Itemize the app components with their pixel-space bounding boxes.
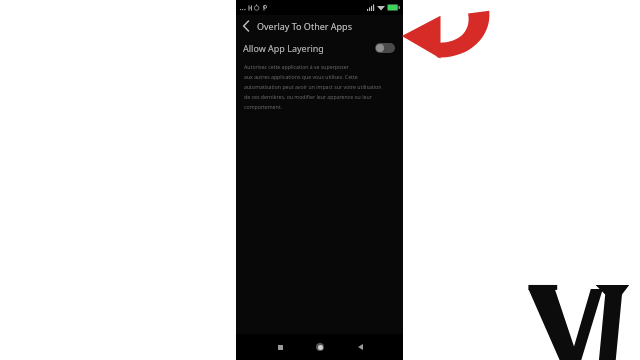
staticText: automatisation peut avoir un impact sur …: [244, 83, 382, 90]
staticText: Allow App Layering: [243, 42, 324, 54]
staticText: Autorisez cette application à se superpo…: [244, 63, 349, 70]
button[interactable]: Recents: [267, 334, 293, 360]
button[interactable]: Back: [347, 334, 373, 360]
button[interactable]: Back: [236, 16, 256, 36]
button[interactable]: Allow App Layering: [236, 37, 403, 59]
other: Pointer arrow: [400, 8, 492, 64]
staticText: de ces dernières, ou modifier leur appar…: [244, 93, 372, 100]
staticText: Overlay To Other Apps: [257, 20, 352, 32]
button[interactable]: Home: [307, 334, 333, 360]
staticText: aux autres applications que vous utilise…: [244, 73, 358, 80]
other: Allow App Layering toggle: [375, 43, 395, 53]
staticText: comportement.: [244, 103, 282, 110]
